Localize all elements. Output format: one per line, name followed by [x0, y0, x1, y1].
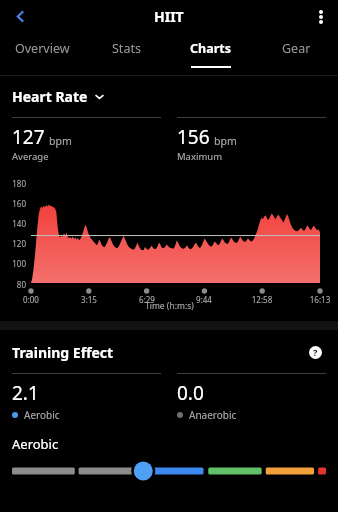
staticText: Training Effect — [12, 343, 304, 362]
button[interactable]: Help — [304, 341, 326, 363]
staticText: 120 — [4, 238, 26, 249]
button[interactable]: More options — [304, 0, 338, 33]
staticText: 2.1 — [12, 380, 39, 406]
button[interactable]: Charts — [168, 33, 253, 75]
staticText: Aerobic — [12, 435, 59, 453]
staticText: Overview — [15, 40, 70, 57]
staticText: Time (h:m:s) — [145, 300, 194, 312]
staticText: Aerobic — [24, 408, 60, 422]
staticText: 156 — [177, 124, 210, 150]
staticText: HIIT — [154, 7, 184, 26]
button[interactable] — [0, 460, 338, 482]
button[interactable]: Overview — [0, 33, 84, 75]
staticText: bpm — [49, 134, 72, 148]
staticText: 9:44 — [187, 294, 221, 305]
staticText: Anaerobic — [189, 408, 237, 422]
staticText: Gear — [282, 40, 311, 57]
button[interactable]: Back — [0, 0, 40, 33]
staticText: 100 — [4, 258, 26, 269]
staticText: 80 — [4, 279, 26, 290]
staticText: 16:13 — [303, 294, 337, 305]
staticText: Maximum — [177, 150, 223, 163]
staticText: Charts — [190, 40, 231, 57]
staticText: bpm — [214, 134, 237, 148]
staticText: ? — [313, 346, 318, 358]
button[interactable]: Heart Rate — [12, 87, 105, 106]
button[interactable]: Gear — [253, 33, 338, 75]
button[interactable]: Stats — [84, 33, 168, 75]
staticText: 180 — [4, 178, 26, 189]
staticText: Stats — [112, 40, 141, 57]
staticText: 0:00 — [14, 294, 48, 305]
staticText: 127 — [12, 124, 45, 150]
staticText: Average — [12, 150, 49, 163]
staticText: 6:29 — [130, 294, 164, 305]
staticText: 3:15 — [72, 294, 106, 305]
staticText: 140 — [4, 218, 26, 229]
staticText: 0.0 — [177, 380, 204, 406]
staticText: Heart Rate — [12, 87, 88, 106]
staticText: 160 — [4, 198, 26, 209]
staticText: 12:58 — [245, 294, 279, 305]
